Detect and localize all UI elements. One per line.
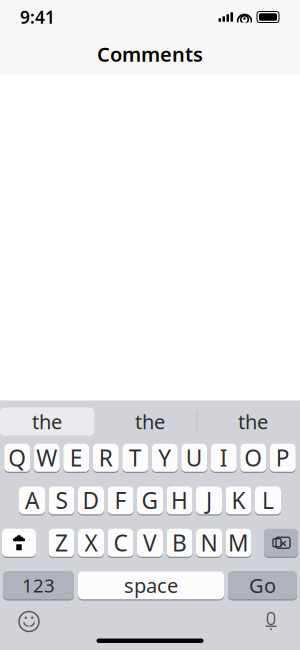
staticText: U bbox=[186, 443, 203, 473]
staticText: the bbox=[238, 408, 268, 435]
staticText: N bbox=[200, 528, 217, 558]
button[interactable]: the bbox=[205, 407, 300, 435]
staticText: K bbox=[231, 485, 245, 515]
button[interactable]: 123 bbox=[3, 570, 74, 600]
button[interactable]: G bbox=[137, 485, 163, 515]
button[interactable]: E bbox=[63, 442, 89, 473]
button[interactable]: K bbox=[225, 485, 251, 515]
button[interactable]: X bbox=[78, 527, 104, 558]
staticText: T bbox=[129, 443, 142, 473]
staticText: G bbox=[141, 485, 158, 515]
staticText: R bbox=[99, 443, 113, 473]
staticText: O bbox=[244, 443, 262, 473]
staticText: Q bbox=[8, 443, 26, 473]
staticText: A bbox=[25, 485, 39, 515]
button[interactable]: L bbox=[255, 485, 281, 515]
button[interactable]: J bbox=[196, 485, 222, 515]
staticText: Y bbox=[158, 443, 171, 473]
staticText: X bbox=[84, 528, 97, 558]
staticText: 123 bbox=[22, 573, 55, 598]
staticText: V bbox=[143, 528, 157, 558]
button[interactable]: B bbox=[166, 527, 192, 558]
button[interactable]: I bbox=[211, 442, 237, 473]
staticText: the bbox=[32, 408, 62, 435]
staticText: S bbox=[55, 485, 67, 515]
button[interactable]: V bbox=[137, 527, 163, 558]
button[interactable]: Q bbox=[4, 442, 30, 473]
button[interactable]: U bbox=[181, 442, 207, 473]
button[interactable]: Z bbox=[48, 527, 74, 558]
staticText: W bbox=[36, 443, 57, 473]
button[interactable]: the bbox=[0, 407, 94, 435]
staticText: F bbox=[114, 485, 126, 515]
button[interactable]: Go bbox=[228, 570, 297, 600]
staticText: P bbox=[276, 443, 290, 473]
button[interactable]: Emoji bbox=[9, 604, 49, 638]
staticText: the bbox=[135, 408, 165, 435]
staticText: M bbox=[228, 528, 249, 558]
button[interactable]: Delete bbox=[264, 527, 298, 558]
staticText: L bbox=[262, 485, 274, 515]
button[interactable]: M bbox=[225, 527, 251, 558]
staticText: Go bbox=[249, 572, 276, 599]
button[interactable]: Shift bbox=[2, 527, 36, 558]
staticText: × bbox=[279, 534, 287, 552]
button[interactable]: T bbox=[122, 442, 148, 473]
button[interactable]: space bbox=[78, 570, 224, 600]
staticText: J bbox=[206, 485, 212, 515]
staticText: D bbox=[82, 485, 99, 515]
button[interactable]: O bbox=[240, 442, 266, 473]
staticText: Z bbox=[55, 528, 68, 558]
staticText: space bbox=[124, 572, 178, 599]
button[interactable]: Y bbox=[152, 442, 178, 473]
button[interactable]: P bbox=[270, 442, 296, 473]
button[interactable]: the bbox=[102, 407, 197, 435]
button[interactable]: F bbox=[107, 485, 133, 515]
staticText: I bbox=[220, 443, 228, 473]
button[interactable]: H bbox=[166, 485, 192, 515]
button[interactable]: R bbox=[93, 442, 119, 473]
staticText: 9:41 bbox=[20, 5, 55, 28]
button[interactable]: D bbox=[78, 485, 104, 515]
staticText: C bbox=[113, 528, 127, 558]
button[interactable]: Dictate bbox=[251, 604, 291, 638]
staticText: E bbox=[70, 443, 83, 473]
staticText: Comments bbox=[97, 41, 203, 67]
button[interactable]: C bbox=[107, 527, 133, 558]
button[interactable]: S bbox=[48, 485, 74, 515]
staticText: H bbox=[171, 485, 188, 515]
staticText: B bbox=[172, 528, 187, 558]
button[interactable]: N bbox=[196, 527, 222, 558]
button[interactable]: W bbox=[34, 442, 60, 473]
button[interactable]: A bbox=[19, 485, 45, 515]
